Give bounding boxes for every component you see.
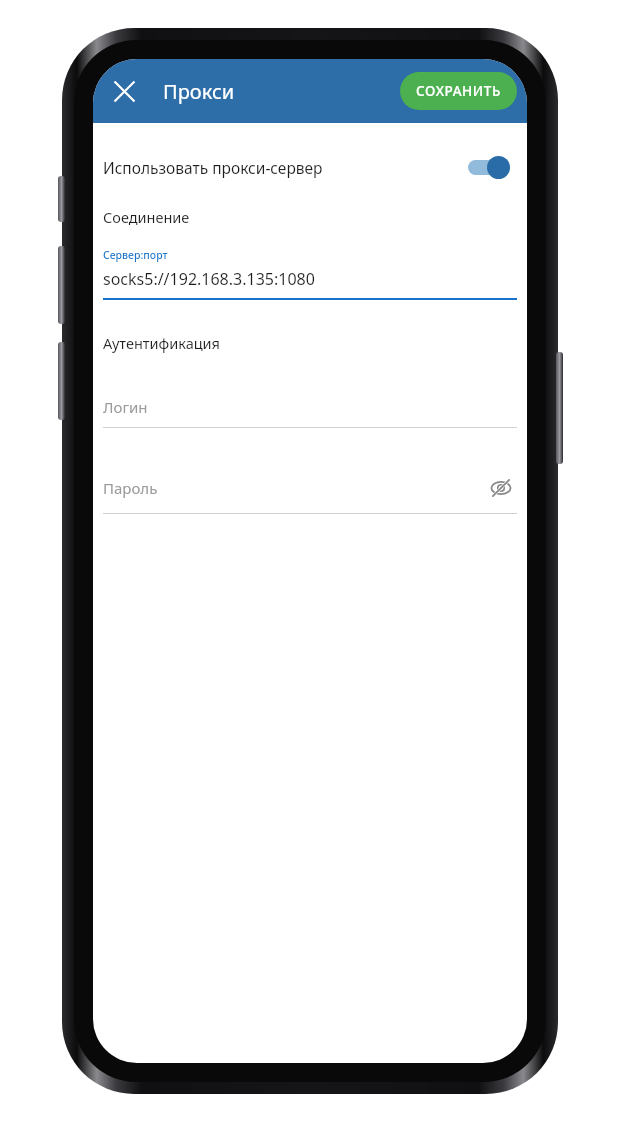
button[interactable]: Использовать прокси-сервер [103, 147, 517, 187]
button[interactable]: Логин [103, 397, 517, 428]
staticText: Соединение [103, 207, 190, 227]
staticText: Логин [103, 397, 148, 417]
staticText: Пароль [103, 478, 158, 498]
button[interactable]: Пароль [103, 473, 517, 503]
button[interactable]: Use proxy server toggle [463, 151, 515, 183]
staticText: Сервер:порт [103, 248, 168, 262]
button[interactable]: СОХРАНИТЬ [400, 72, 517, 110]
button[interactable]: Сервер:порт [103, 248, 517, 300]
staticText: СОХРАНИТЬ [416, 82, 501, 100]
staticText: Прокси [163, 78, 235, 105]
button[interactable]: Show password [486, 473, 516, 503]
staticText: socks5://192.168.3.135:1080 [103, 268, 315, 290]
staticText: Аутентификация [103, 333, 220, 353]
button[interactable]: Close [101, 68, 147, 114]
staticText: Использовать прокси-сервер [103, 157, 323, 178]
